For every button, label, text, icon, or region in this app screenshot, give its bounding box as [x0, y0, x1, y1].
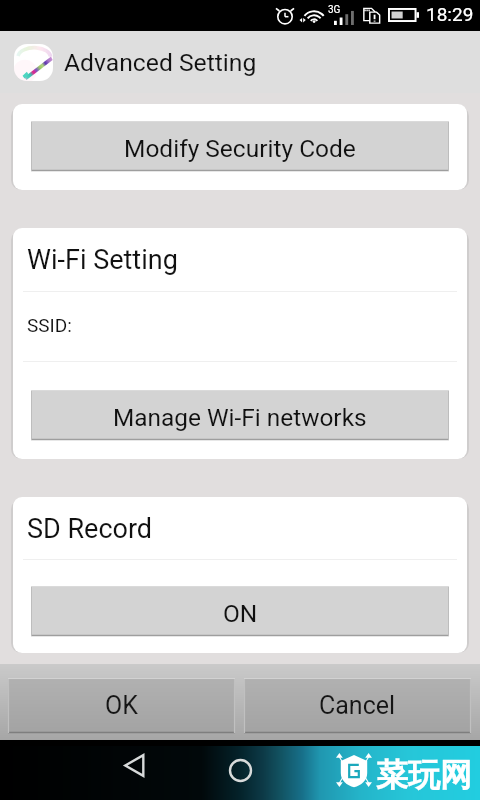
staticText: 3G [328, 4, 341, 16]
button[interactable]: ON [31, 586, 449, 636]
staticText: ON [223, 599, 258, 628]
button[interactable]: Home [218, 748, 263, 792]
staticText: SD Record [27, 513, 153, 545]
staticText: Modify Security Code [124, 134, 356, 163]
staticText: SSID: [27, 314, 72, 336]
staticText: 菜玩网 [376, 755, 472, 795]
staticText: OK [105, 691, 138, 720]
staticText: Manage Wi-Fi networks [113, 403, 367, 432]
button[interactable]: Modify Security Code [31, 121, 449, 171]
staticText: Wi-Fi Setting [27, 244, 178, 276]
button[interactable]: Back [112, 743, 156, 787]
button[interactable]: Manage Wi-Fi networks [31, 390, 449, 440]
button[interactable]: OK [8, 678, 235, 733]
button[interactable]: Cancel [244, 678, 471, 733]
staticText: Advanced Setting [64, 48, 257, 77]
staticText: Cancel [319, 691, 396, 720]
staticText: 18:29 [426, 3, 474, 25]
